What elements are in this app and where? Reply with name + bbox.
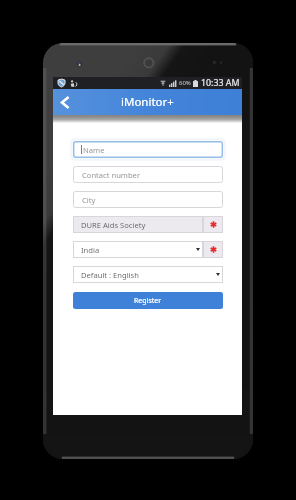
button[interactable]: City bbox=[73, 191, 223, 208]
staticText: Name bbox=[83, 145, 105, 155]
staticText: 60% bbox=[179, 79, 191, 87]
staticText: Register bbox=[134, 296, 162, 306]
staticText: iMonitor+ bbox=[121, 94, 174, 110]
button[interactable]: Required field bbox=[203, 241, 223, 258]
button[interactable]: Register bbox=[73, 292, 223, 309]
staticText: DURE Aids Society bbox=[81, 220, 146, 230]
button[interactable]: Required field bbox=[203, 216, 223, 233]
staticText: India bbox=[81, 245, 100, 255]
button[interactable]: DURE Aids Society bbox=[73, 216, 203, 233]
staticText: Default : English bbox=[81, 270, 139, 280]
button[interactable]: Back bbox=[54, 89, 76, 115]
button[interactable]: Name bbox=[73, 141, 223, 158]
staticText: 10:33 AM bbox=[201, 77, 240, 89]
staticText: City bbox=[82, 195, 96, 205]
button[interactable]: India bbox=[73, 241, 203, 258]
staticText: Contact number bbox=[82, 170, 141, 180]
button[interactable]: Contact number bbox=[73, 166, 223, 183]
button[interactable]: Default : English bbox=[73, 266, 223, 283]
